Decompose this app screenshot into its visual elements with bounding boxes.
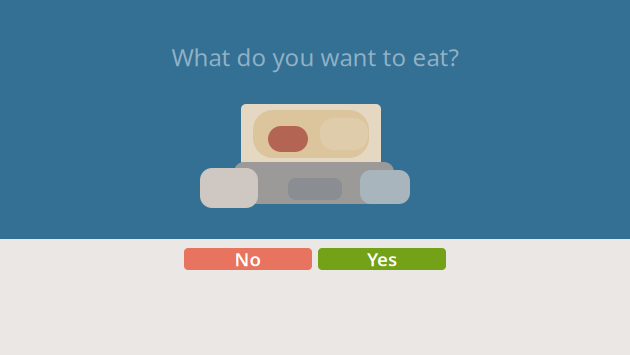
button[interactable]: Yes [318, 248, 446, 270]
button[interactable]: No [184, 248, 312, 270]
staticText: What do you want to eat? [171, 41, 458, 73]
staticText: Yes [367, 247, 397, 271]
staticText: No [234, 247, 261, 271]
